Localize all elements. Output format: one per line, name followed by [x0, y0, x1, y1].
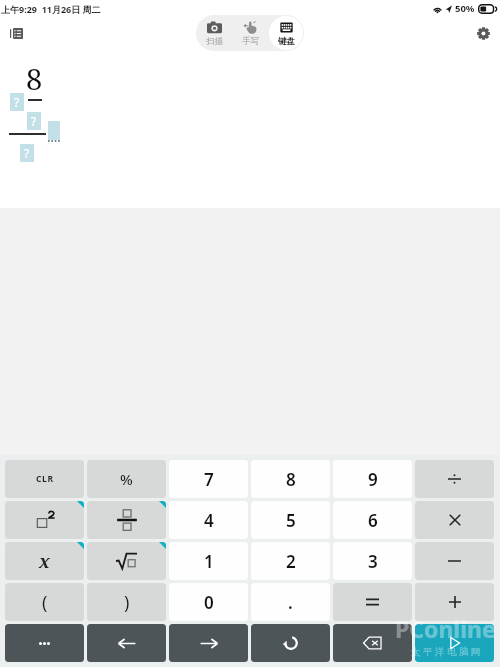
button[interactable]: 0 [169, 583, 248, 621]
button[interactable]: Settings [471, 21, 495, 45]
button[interactable]: 4 [169, 501, 248, 539]
staticText: 50% [455, 2, 475, 15]
button[interactable]: Undo [251, 624, 330, 662]
staticText: ) [124, 590, 130, 615]
button[interactable]: . [251, 583, 330, 621]
button[interactable]: Fraction [87, 501, 166, 539]
staticText: PConline [395, 613, 496, 644]
button[interactable]: 3 [333, 542, 412, 580]
button[interactable]: 扫描 [197, 16, 231, 50]
button[interactable]: 9 [333, 460, 412, 498]
staticText: 2 [286, 550, 296, 573]
button[interactable]: 7 [169, 460, 248, 498]
staticText: . [288, 591, 293, 614]
button[interactable]: Move right [169, 624, 248, 662]
staticText: 6 [368, 509, 378, 532]
staticText: 3 [368, 550, 378, 573]
button[interactable]: 1 [169, 542, 248, 580]
button[interactable]: CLR [5, 460, 84, 498]
button[interactable]: ( [5, 583, 84, 621]
staticText: 太 平 洋 电 脑 网 [411, 645, 481, 658]
staticText: 键盘 [278, 36, 295, 47]
button[interactable]: Square root [87, 542, 166, 580]
staticText: 4 [204, 509, 214, 532]
staticText: ? [31, 113, 37, 129]
staticText: 扫描 [206, 36, 223, 47]
staticText: CLR [36, 473, 54, 485]
button[interactable]: 5 [251, 501, 330, 539]
staticText: 1 [204, 550, 214, 573]
staticText: 手写 [242, 36, 259, 47]
button[interactable]: Move left [87, 624, 166, 662]
button[interactable]: ) [87, 583, 166, 621]
button[interactable]: Divide [415, 460, 494, 498]
button[interactable]: Minus [415, 542, 494, 580]
button[interactable]: Plus [415, 583, 494, 621]
button[interactable]: Backspace [333, 624, 412, 662]
staticText: 上午9:29 11月26日 周二 [1, 3, 101, 15]
staticText: 5 [286, 509, 296, 532]
staticText: ( [42, 590, 48, 615]
button[interactable]: 手写 [233, 16, 267, 50]
button[interactable]: Calculate [415, 624, 494, 662]
staticText: ? [14, 94, 20, 110]
staticText: 8 [286, 468, 296, 491]
staticText: 9 [368, 468, 378, 491]
button[interactable]: 键盘 [269, 16, 303, 50]
staticText: 7 [204, 468, 214, 491]
button[interactable]: % [87, 460, 166, 498]
staticText: 0 [204, 591, 214, 614]
button[interactable]: Multiply [415, 501, 494, 539]
button[interactable]: Square [5, 501, 84, 539]
button[interactable]: Equals [333, 583, 412, 621]
button[interactable]: 6 [333, 501, 412, 539]
staticText: 8 [26, 59, 43, 98]
button[interactable]: 2 [251, 542, 330, 580]
staticText: ? [24, 145, 30, 161]
button[interactable]: x [5, 542, 84, 580]
staticText: x [39, 549, 50, 574]
staticText: % [120, 469, 133, 489]
button[interactable]: 8 [251, 460, 330, 498]
button[interactable]: More [5, 624, 84, 662]
button[interactable]: History [4, 21, 28, 45]
